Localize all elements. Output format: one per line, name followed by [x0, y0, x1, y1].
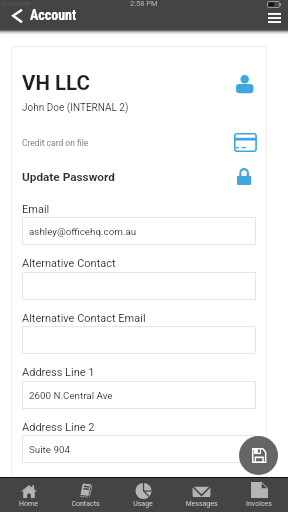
button[interactable]: Usage	[114, 478, 172, 512]
staticText: City	[22, 475, 41, 488]
staticText: ashley@officehq.com.au	[29, 226, 137, 237]
staticText: Home	[19, 500, 38, 508]
button[interactable]: Account	[228, 68, 260, 100]
staticText: Alternative Contact	[22, 257, 116, 270]
staticText: Usage	[133, 500, 153, 508]
button[interactable]: Suite 904	[22, 435, 256, 463]
staticText: Account	[30, 7, 77, 23]
staticText: Update Password	[22, 170, 115, 184]
button[interactable]	[22, 326, 256, 354]
button[interactable]: Invoices	[230, 478, 288, 512]
staticText: Email	[22, 203, 50, 216]
button[interactable]: Home	[0, 478, 57, 512]
staticText: Messages	[185, 500, 218, 508]
staticText: Alternative Contact Email	[22, 312, 146, 325]
staticText: Credit card on file	[22, 138, 89, 148]
button[interactable]: Credit card	[229, 126, 262, 159]
staticText: Address Line 1	[22, 366, 95, 379]
button[interactable]: 2600 N.Central Ave	[22, 381, 256, 409]
staticText: Suite 904	[29, 444, 70, 455]
staticText: John Doe (INTERNAL 2)	[22, 102, 129, 114]
button[interactable]: Save	[239, 436, 278, 475]
staticText: 2:58 PM	[130, 0, 158, 8]
button[interactable]	[22, 272, 256, 300]
button[interactable]: Contacts	[57, 478, 114, 512]
staticText: Carrier	[2, 0, 25, 8]
staticText: 2600 N.Central Ave	[29, 390, 113, 401]
button[interactable]: Back	[6, 6, 27, 26]
staticText: Address Line 2	[22, 421, 95, 434]
staticText: Contacts	[71, 500, 100, 508]
staticText: Invoices	[246, 500, 272, 508]
button[interactable]: Update password	[229, 161, 259, 191]
staticText: VH LLC	[22, 71, 90, 95]
button[interactable]	[22, 489, 256, 512]
button[interactable]: Menu	[263, 9, 285, 27]
button[interactable]: Messages	[172, 478, 230, 512]
button[interactable]: ashley@officehq.com.au	[22, 217, 256, 245]
